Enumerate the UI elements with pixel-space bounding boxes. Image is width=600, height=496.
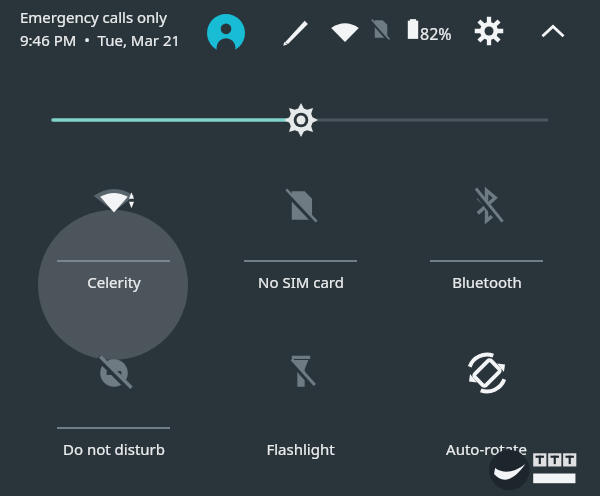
staticText: 9:46 PM • Tue, Mar 21 xyxy=(20,30,181,50)
button[interactable]: Auto-rotate xyxy=(406,350,566,470)
staticText: Emergency calls only xyxy=(20,7,167,27)
button[interactable]: Flashlight xyxy=(220,350,380,470)
staticText: Celerity xyxy=(87,272,141,292)
staticText: No SIM card xyxy=(258,272,344,292)
button[interactable]: Edit xyxy=(281,17,313,49)
button[interactable]: User account xyxy=(207,14,245,52)
button[interactable]: Bluetooth xyxy=(406,183,566,303)
button[interactable]: Celerity xyxy=(33,183,193,303)
staticText: Auto-rotate xyxy=(446,439,527,459)
staticText: Bluetooth xyxy=(452,272,522,292)
button[interactable]: Do not disturb xyxy=(33,350,193,470)
button[interactable]: No SIM card xyxy=(220,183,380,303)
staticText: 82% xyxy=(420,23,452,45)
button[interactable]: Settings xyxy=(474,16,504,46)
button[interactable]: Collapse xyxy=(539,18,567,46)
staticText: Flashlight xyxy=(266,439,335,459)
staticText: Do not disturb xyxy=(63,439,165,459)
button[interactable]: Brightness xyxy=(0,100,600,140)
